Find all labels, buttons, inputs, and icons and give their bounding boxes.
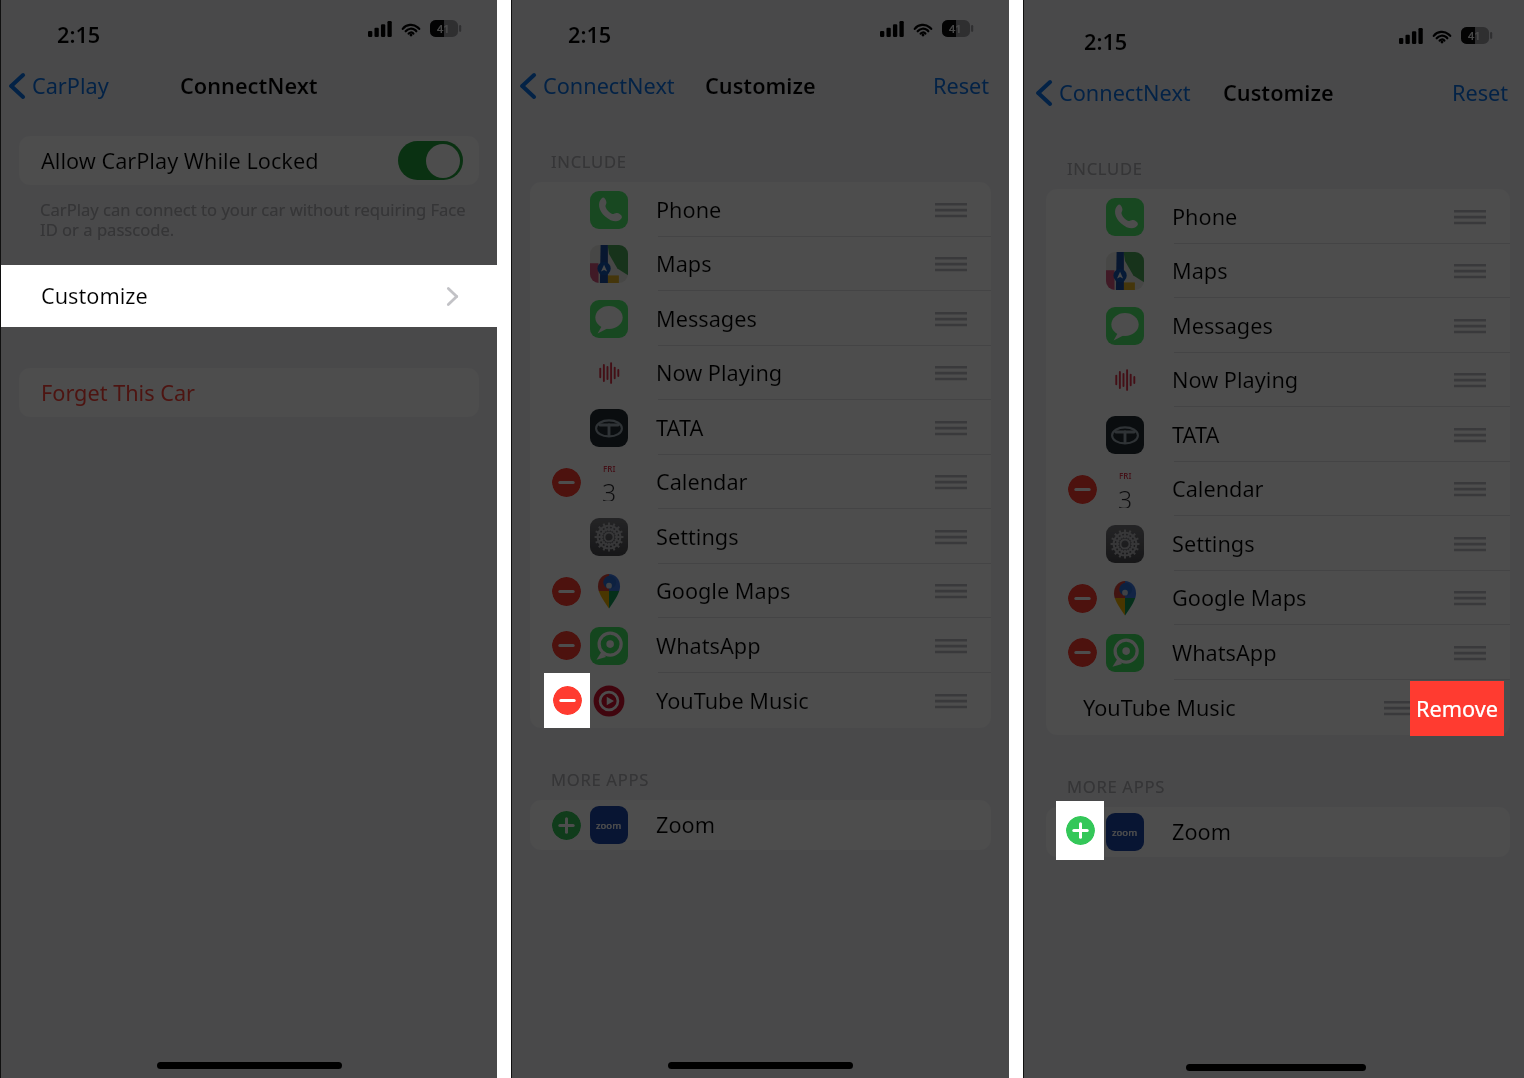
staticText: 2:15: [1084, 27, 1128, 57]
button[interactable]: Back: [1036, 78, 1191, 108]
button[interactable]: Remove from list: [552, 577, 581, 606]
button[interactable]: Add to list: [1046, 807, 1510, 857]
staticText: Messages: [656, 304, 757, 334]
button[interactable]: Reorder: [1454, 646, 1486, 660]
staticText: Now Playing: [1172, 365, 1299, 395]
staticText: 2:15: [568, 20, 612, 50]
button[interactable]: Remove from list: [530, 673, 991, 728]
staticText: Maps: [656, 249, 712, 279]
button[interactable]: Reorder: [1454, 264, 1486, 278]
button[interactable]: Remove from list: [552, 631, 581, 660]
staticText: MORE APPS: [551, 768, 649, 791]
button[interactable]: Now Playing: [1046, 353, 1510, 407]
button[interactable]: Reorder: [1384, 701, 1416, 715]
staticText: ConnectNext: [1059, 78, 1191, 108]
button[interactable]: Now Playing: [530, 346, 991, 400]
button[interactable]: Reorder: [1454, 319, 1486, 333]
staticText: Forget This Car: [41, 378, 196, 408]
button[interactable]: Remove from list: [530, 564, 991, 618]
button[interactable]: Reorder: [935, 530, 967, 544]
button[interactable]: Reorder: [1454, 210, 1486, 224]
button[interactable]: Reorder: [935, 639, 967, 653]
staticText: CarPlay: [32, 71, 109, 101]
staticText: FRI: [1119, 470, 1132, 481]
staticText: Messages: [1172, 311, 1273, 341]
button[interactable]: Add to list: [1068, 818, 1097, 847]
button[interactable]: Remove: [1410, 681, 1504, 736]
staticText: 41: [437, 21, 450, 36]
other: Back: [1036, 80, 1052, 106]
button[interactable]: Reorder: [935, 584, 967, 598]
button[interactable]: Reorder: [935, 475, 967, 489]
staticText: WhatsApp: [1172, 638, 1277, 668]
button[interactable]: Remove from list: [1068, 475, 1097, 504]
staticText: 41: [949, 21, 962, 36]
staticText: MORE APPS: [1067, 775, 1165, 798]
button[interactable]: Maps: [1046, 244, 1510, 298]
button[interactable]: Remove from list: [544, 673, 590, 728]
button[interactable]: Reset: [1452, 78, 1509, 108]
button[interactable]: Reorder: [1454, 373, 1486, 387]
button[interactable]: Add to list: [530, 800, 991, 850]
button[interactable]: TATA: [1046, 407, 1510, 462]
staticText: YouTube Music: [1083, 693, 1236, 723]
button[interactable]: Phone: [1046, 189, 1510, 244]
button[interactable]: Reorder: [1454, 428, 1486, 442]
button[interactable]: Remove from list: [553, 686, 582, 715]
button[interactable]: Customize: [19, 271, 479, 321]
button[interactable]: Reorder: [935, 421, 967, 435]
staticText: INCLUDE: [1067, 157, 1143, 180]
staticText: FRI: [603, 463, 616, 474]
button[interactable]: YouTube Music: [1046, 680, 1510, 735]
button[interactable]: Maps: [530, 237, 991, 291]
staticText: YouTube Music: [656, 686, 809, 716]
button[interactable]: Reset: [933, 71, 990, 101]
button[interactable]: Remove from list: [1068, 638, 1097, 667]
staticText: Customize: [1223, 78, 1334, 108]
button[interactable]: Remove from list: [552, 468, 581, 497]
button[interactable]: Remove from list: [530, 455, 991, 509]
button[interactable]: Remove from list: [1046, 462, 1510, 516]
button[interactable]: Forget This Car: [19, 368, 479, 417]
button[interactable]: Remove from list: [1068, 584, 1097, 613]
button[interactable]: Messages: [1046, 298, 1510, 353]
button[interactable]: Remove from list: [1046, 571, 1510, 625]
staticText: TATA: [656, 413, 704, 443]
button[interactable]: Reorder: [935, 203, 967, 217]
staticText: zoom: [596, 819, 622, 832]
button[interactable]: Remove from list: [530, 618, 991, 673]
staticText: Google Maps: [1172, 583, 1307, 613]
button[interactable]: Remove from list: [1046, 625, 1510, 680]
button[interactable]: Add to list: [1066, 816, 1095, 845]
staticText: Remove: [1416, 694, 1498, 724]
button[interactable]: Reorder: [935, 366, 967, 380]
button[interactable]: Add to list: [1056, 801, 1104, 860]
button[interactable]: Settings: [530, 509, 991, 564]
button[interactable]: Allow CarPlay While Locked toggle: [398, 141, 463, 180]
other: Back: [520, 73, 536, 99]
button[interactable]: Add to list: [552, 811, 581, 840]
button[interactable]: Messages: [530, 291, 991, 346]
staticText: Settings: [656, 522, 739, 552]
staticText: Allow CarPlay While Locked: [41, 146, 319, 176]
button[interactable]: Reorder: [935, 694, 967, 708]
button[interactable]: TATA: [530, 400, 991, 455]
button[interactable]: Reorder: [935, 312, 967, 326]
button[interactable]: Reorder: [935, 257, 967, 271]
staticText: Calendar: [656, 467, 748, 497]
button[interactable]: Reorder: [1454, 591, 1486, 605]
staticText: Calendar: [1172, 474, 1264, 504]
button[interactable]: Reorder: [1454, 537, 1486, 551]
button[interactable]: Allow CarPlay While Locked: [19, 136, 479, 185]
staticText: TATA: [1172, 420, 1220, 450]
staticText: Zoom: [1172, 817, 1231, 847]
button[interactable]: Remove from list: [552, 686, 581, 715]
button[interactable]: Back: [520, 71, 675, 101]
button[interactable]: Back: [9, 71, 109, 101]
staticText: Maps: [1172, 256, 1228, 286]
button[interactable]: Settings: [1046, 516, 1510, 571]
staticText: Customize: [41, 281, 148, 311]
staticText: Settings: [1172, 529, 1255, 559]
button[interactable]: Phone: [530, 182, 991, 237]
button[interactable]: Reorder: [1454, 482, 1486, 496]
